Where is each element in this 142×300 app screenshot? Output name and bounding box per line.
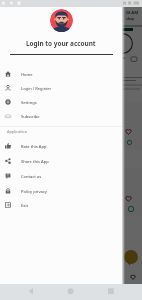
staticText: GLAM: [126, 10, 139, 16]
staticText: Exit: [21, 203, 29, 208]
button[interactable]: Exit: [0, 198, 122, 212]
staticText: shop: [126, 16, 135, 21]
button[interactable]: Settings: [0, 95, 122, 109]
button[interactable]: Rate this App: [0, 139, 122, 153]
button[interactable]: Subscribe: [0, 109, 122, 123]
staticText: Login / Register: [21, 86, 52, 91]
staticText: Policy privacy: [21, 189, 47, 194]
staticText: Login to your account: [26, 39, 96, 48]
button[interactable]: Contact us: [0, 169, 122, 183]
button[interactable]: Policy privacy: [0, 184, 122, 198]
staticText: Subscribe: [21, 114, 40, 119]
button[interactable]: Share this App: [0, 154, 122, 168]
button[interactable]: Home: [0, 67, 122, 81]
staticText: Contact us: [21, 174, 42, 179]
staticText: Home: [21, 72, 33, 77]
staticText: Settings: [21, 100, 37, 105]
staticText: Share this App: [21, 159, 49, 164]
button[interactable]: Login / Register: [0, 81, 122, 95]
staticText: Rate this App: [21, 144, 47, 149]
staticText: Application: [7, 129, 28, 134]
